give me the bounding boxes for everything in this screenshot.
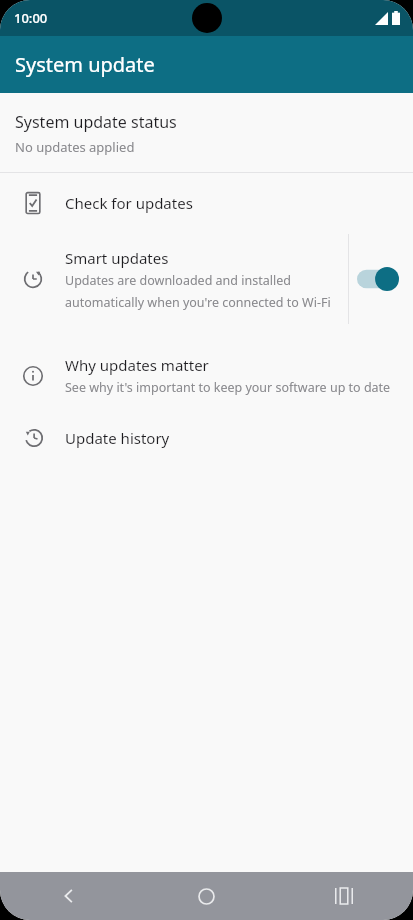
staticText: Check for updates — [65, 193, 193, 213]
button[interactable]: Smart updates toggle — [351, 259, 405, 299]
staticText: Updates are downloaded and installed aut… — [65, 272, 335, 311]
staticText: See why it's important to keep your soft… — [65, 379, 391, 396]
button[interactable]: Why updates matter — [0, 334, 413, 417]
button[interactable]: Check for updates — [0, 182, 413, 224]
button[interactable]: Home — [137, 872, 275, 920]
button[interactable]: Update history — [0, 417, 413, 459]
staticText: Update history — [65, 428, 170, 448]
staticText: Why updates matter — [65, 355, 209, 375]
button[interactable]: System update status — [0, 93, 413, 172]
staticText: Smart updates — [65, 248, 169, 268]
staticText: System update — [15, 51, 155, 78]
button[interactable]: Back — [0, 872, 137, 920]
staticText: System update status — [15, 111, 177, 133]
button[interactable]: Smart updates — [0, 224, 413, 334]
staticText: No updates applied — [15, 138, 135, 156]
staticText: 10:00 — [14, 9, 48, 27]
button[interactable]: Recent apps — [275, 872, 413, 920]
